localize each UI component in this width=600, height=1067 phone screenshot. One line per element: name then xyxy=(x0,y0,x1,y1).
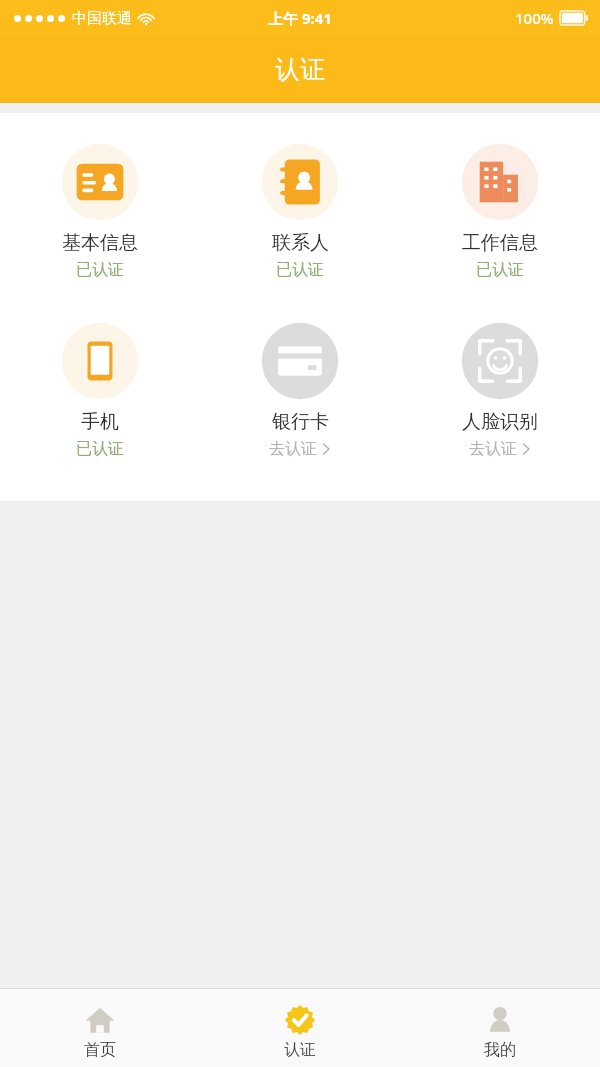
staticText: 我的 xyxy=(484,1040,516,1060)
staticText: 手机 xyxy=(81,410,119,434)
staticText: 认证 xyxy=(284,1040,316,1060)
button[interactable]: 工作信息 xyxy=(400,141,600,282)
staticText: 中国联通 xyxy=(72,9,132,28)
button[interactable]: 人脸识别 xyxy=(400,320,600,461)
button[interactable]: 基本信息 xyxy=(0,141,200,282)
button[interactable]: Verification xyxy=(200,996,400,1060)
staticText: 已认证 xyxy=(76,439,124,459)
staticText: 人脸识别 xyxy=(462,410,538,434)
staticText: 已认证 xyxy=(76,260,124,280)
staticText: 联系人 xyxy=(272,231,329,255)
staticText: 首页 xyxy=(84,1040,116,1060)
button[interactable]: Home xyxy=(0,996,200,1060)
staticText: 认证 xyxy=(275,54,325,85)
staticText: 工作信息 xyxy=(462,231,538,255)
staticText: 已认证 xyxy=(476,260,524,280)
staticText: 银行卡 xyxy=(272,410,329,434)
staticText: 基本信息 xyxy=(62,231,138,255)
staticText: 去认证 xyxy=(269,439,317,459)
staticText: 已认证 xyxy=(276,260,324,280)
staticText: 100% xyxy=(515,8,554,28)
button[interactable]: 手机 xyxy=(0,320,200,461)
staticText: 去认证 xyxy=(469,439,517,459)
staticText: 上午 9:41 xyxy=(268,8,332,28)
button[interactable]: 联系人 xyxy=(200,141,400,282)
button[interactable]: 银行卡 xyxy=(200,320,400,461)
button[interactable]: Profile xyxy=(400,996,600,1060)
